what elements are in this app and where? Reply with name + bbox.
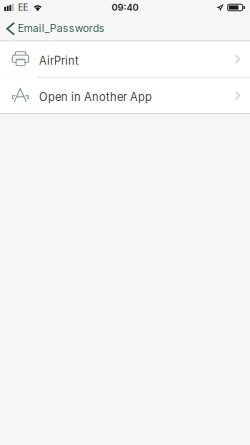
staticText: EE [18,2,28,13]
staticText: 09:40 [111,2,138,13]
button[interactable]: Open in Another App [0,78,250,113]
staticText: Email_Passwords [18,22,105,35]
staticText: AirPrint [39,54,79,67]
button[interactable]: Email_Passwords [0,19,113,40]
staticText: Open in Another App [39,90,152,104]
button[interactable]: AirPrint [0,41,250,77]
